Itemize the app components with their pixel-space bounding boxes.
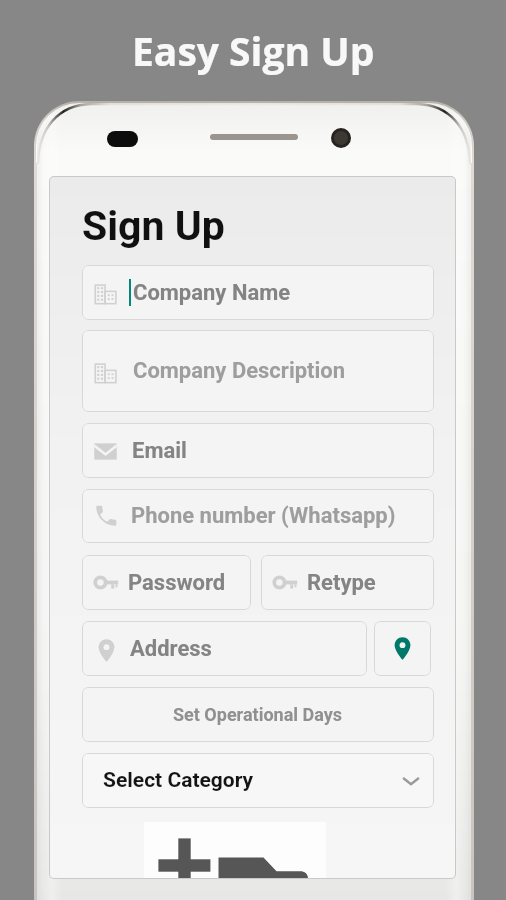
button[interactable]: Phone number (Whatsapp) xyxy=(82,489,434,543)
staticText: Email xyxy=(132,438,187,464)
button[interactable]: Set Operational Days xyxy=(82,687,434,742)
staticText: Address xyxy=(130,636,212,662)
staticText: Easy Sign Up xyxy=(132,24,375,77)
staticText: Company Name xyxy=(133,280,291,306)
staticText: Select Category xyxy=(103,768,254,793)
staticText: Set Operational Days xyxy=(173,704,343,725)
button[interactable]: Company Name xyxy=(82,265,434,320)
staticText: Retype xyxy=(307,570,376,596)
button[interactable]: Address xyxy=(82,621,367,676)
staticText: Phone number (Whatsapp) xyxy=(131,503,396,529)
staticText: Company Description xyxy=(133,358,346,384)
staticText: Password xyxy=(128,570,226,596)
button[interactable]: Password xyxy=(82,555,251,610)
button[interactable]: Company Description xyxy=(82,330,434,412)
button[interactable]: Pick location on map xyxy=(374,621,431,676)
button[interactable]: Retype xyxy=(261,555,434,610)
button[interactable]: Select Category xyxy=(82,753,434,808)
button[interactable]: Email xyxy=(82,423,434,478)
staticText: Sign Up xyxy=(82,202,225,250)
